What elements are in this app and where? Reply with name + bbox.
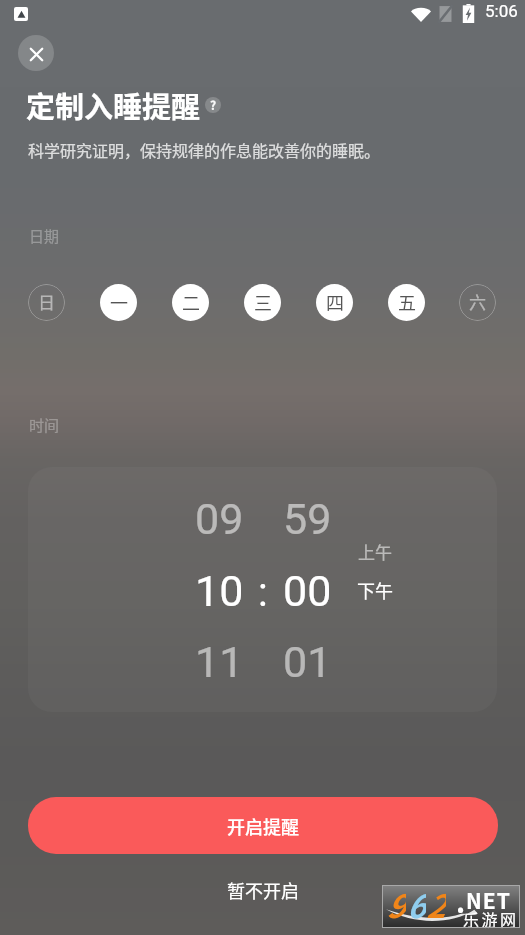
button[interactable]: 开启提醒 — [28, 797, 498, 854]
button[interactable]: 五 — [388, 284, 425, 321]
button[interactable]: 四 — [316, 284, 353, 321]
staticText: 下午 — [357, 577, 393, 603]
staticText: 6 — [406, 881, 426, 924]
staticText: . — [456, 881, 466, 922]
button[interactable]: 下午 — [335, 574, 415, 606]
button[interactable]: 01 — [267, 634, 347, 690]
staticText: 5:06 — [485, 1, 518, 21]
staticText: NET — [466, 885, 511, 915]
staticText: 开启提醒 — [227, 813, 299, 839]
button[interactable]: 00 — [267, 563, 347, 619]
button[interactable]: Close — [18, 35, 54, 71]
staticText: 2 — [426, 881, 446, 924]
staticText: 一 — [110, 289, 128, 315]
button[interactable]: 09 — [179, 491, 259, 547]
staticText: 三 — [254, 289, 272, 315]
staticText: 10 — [195, 566, 244, 616]
staticText: 日 — [38, 289, 55, 314]
staticText: 01 — [283, 637, 332, 687]
staticText: 时间 — [29, 414, 60, 436]
button[interactable]: 二 — [172, 284, 209, 321]
staticText: 科学研究证明，保持规律的作息能改善你的睡眠。 — [28, 138, 381, 161]
staticText: 乐游网 — [463, 907, 519, 930]
button[interactable]: 11 — [179, 634, 259, 690]
button[interactable]: 日 — [28, 284, 65, 321]
staticText: 09 — [195, 494, 244, 544]
staticText: 上午 — [358, 539, 392, 564]
staticText: 9 — [386, 881, 406, 924]
staticText: 二 — [182, 289, 200, 315]
staticText: 11 — [195, 637, 244, 687]
staticText: 五 — [398, 289, 416, 315]
button[interactable]: 三 — [244, 284, 281, 321]
staticText: 暂不开启 — [227, 877, 299, 903]
button[interactable]: 暂不开启 — [0, 873, 525, 907]
staticText: 00 — [283, 566, 332, 616]
staticText: 四 — [326, 289, 344, 315]
button[interactable]: 59 — [267, 491, 347, 547]
staticText: 定制入睡提醒 — [26, 84, 201, 126]
button[interactable]: Help — [205, 97, 221, 113]
staticText: 日期 — [29, 225, 60, 247]
staticText: 59 — [283, 494, 332, 544]
button[interactable]: 六 — [459, 284, 496, 321]
staticText: : — [258, 569, 268, 613]
button[interactable]: 一 — [100, 284, 137, 321]
staticText: ? — [210, 97, 217, 112]
button[interactable]: 10 — [179, 563, 259, 619]
staticText: 六 — [469, 289, 486, 314]
